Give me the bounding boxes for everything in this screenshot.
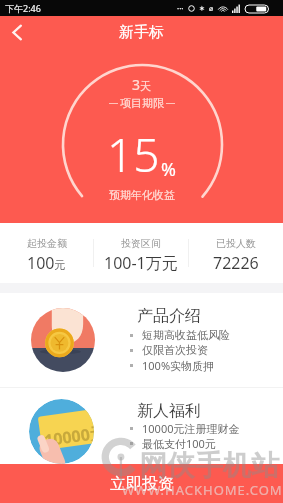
staticText: 新人福利 (137, 401, 201, 421)
staticText: 预期年化收益 (109, 188, 175, 202)
staticText: 网侠手机站 (139, 448, 279, 483)
staticText: 立即投资 (110, 474, 174, 494)
staticText: 10000元注册理财金 (142, 421, 240, 436)
button[interactable]: 产品介绍 (0, 293, 283, 387)
staticText: 已投人数 (216, 237, 256, 250)
staticText: 最低支付100元 (142, 436, 216, 451)
button[interactable]: 10000元 (0, 388, 283, 464)
staticText: 100-1万元 (104, 252, 178, 274)
staticText: 新手标 (119, 23, 164, 42)
staticText: % (161, 157, 176, 182)
staticText: 起投金额 (27, 237, 67, 250)
staticText: 3天 (132, 75, 152, 94)
staticText: 仅限首次投资 (142, 343, 208, 357)
staticText: ✶ (199, 5, 205, 13)
staticText: 15 (107, 123, 160, 186)
staticText: 投资区间 (121, 237, 161, 250)
staticText: 下午2:46 (5, 2, 41, 14)
staticText: ··· (177, 3, 184, 14)
staticText: 72226 (213, 252, 259, 274)
staticText: 产品介绍 (137, 306, 201, 326)
staticText: 短期高收益低风险 (142, 328, 230, 342)
staticText: ⌀ (209, 5, 214, 13)
staticText: 100元 (27, 252, 66, 274)
staticText: WWW.HACKHOME.COM (122, 481, 283, 499)
staticText: 100%实物质押 (142, 358, 215, 373)
staticText: 10000元 (43, 421, 94, 451)
button[interactable]: 立即投资 (0, 464, 283, 503)
button[interactable]: Back (0, 16, 34, 49)
staticText: 项目期限 (120, 96, 164, 110)
